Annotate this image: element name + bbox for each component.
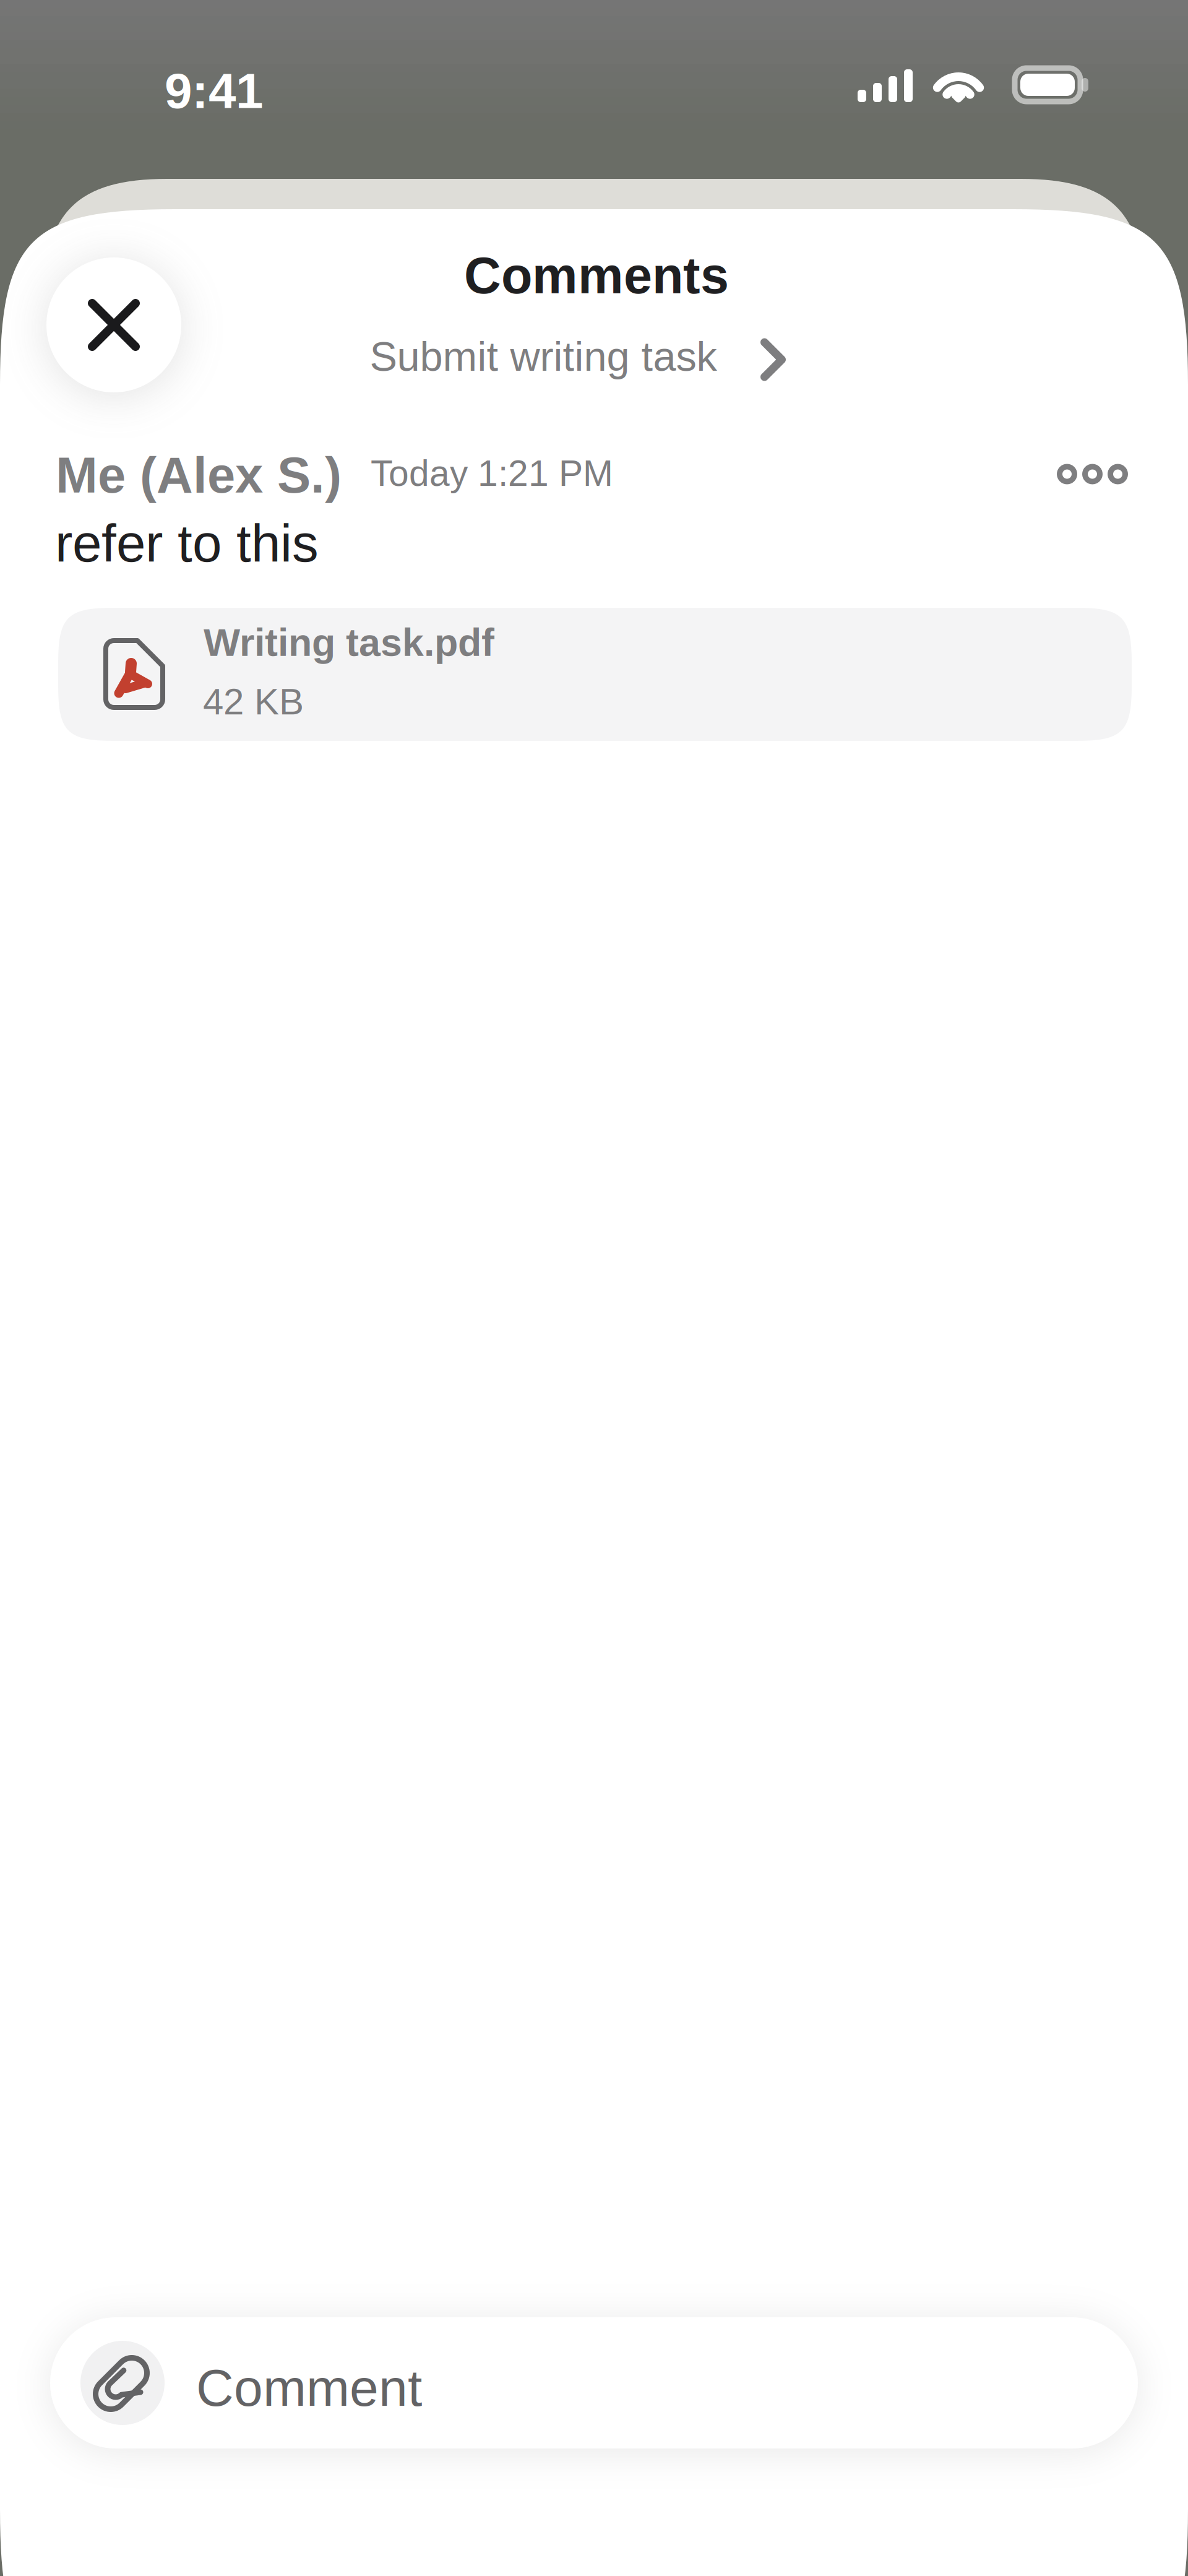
staticText: Comments [464,247,729,304]
staticText: Comment [196,2359,422,2417]
staticText: refer to this [55,514,319,573]
staticText: Writing task.pdf [204,621,494,664]
button[interactable]: Submit writing task [0,327,1172,386]
staticText: Me (Alex S.) [56,447,342,503]
button[interactable]: Close [46,257,181,392]
staticText: 9:41 [165,63,263,118]
button[interactable]: Writing task.pdf [58,608,1132,741]
button[interactable]: Comment [50,2317,1138,2448]
staticText: Today 1:21 PM [371,453,613,494]
button[interactable]: More options [1052,440,1133,508]
staticText: Submit writing task [370,333,717,380]
staticText: 42 KB [203,681,304,722]
